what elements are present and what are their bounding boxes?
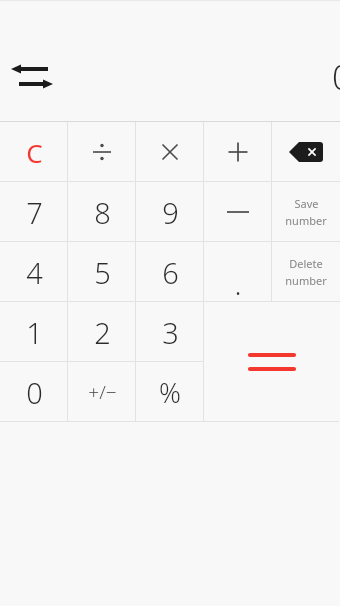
staticText: 8 bbox=[94, 193, 111, 232]
staticText: 0 bbox=[26, 373, 43, 412]
staticText: 1 bbox=[26, 313, 43, 352]
button[interactable]: 3 bbox=[136, 302, 204, 362]
staticText: 6 bbox=[162, 253, 179, 292]
button[interactable]: 5 bbox=[68, 242, 136, 302]
button[interactable]: Minus bbox=[204, 182, 272, 242]
button[interactable]: +/− bbox=[68, 362, 136, 422]
button[interactable]: % bbox=[136, 362, 204, 422]
button[interactable]: 1 bbox=[0, 302, 68, 362]
staticText: 3 bbox=[162, 313, 179, 352]
staticText: 0 bbox=[332, 54, 340, 100]
button[interactable]: Divide bbox=[68, 122, 136, 182]
button[interactable]: 9 bbox=[136, 182, 204, 242]
button[interactable]: 6 bbox=[136, 242, 204, 302]
staticText: % bbox=[159, 374, 181, 411]
staticText: number bbox=[285, 273, 327, 288]
staticText: C bbox=[26, 135, 43, 170]
button[interactable]: Delete bbox=[272, 242, 340, 302]
button[interactable]: Plus bbox=[204, 122, 272, 182]
staticText: +/− bbox=[88, 379, 117, 405]
button[interactable]: Backspace bbox=[272, 122, 340, 182]
staticText: . bbox=[234, 264, 242, 303]
staticText: 4 bbox=[26, 253, 43, 292]
staticText: Save bbox=[294, 196, 319, 211]
button[interactable]: Equals bbox=[204, 302, 339, 422]
button[interactable]: Swap bbox=[10, 61, 54, 95]
staticText: 9 bbox=[162, 193, 179, 232]
button[interactable]: 8 bbox=[68, 182, 136, 242]
button[interactable]: C bbox=[0, 122, 68, 182]
button[interactable]: 0 bbox=[0, 362, 68, 422]
staticText: Delete bbox=[289, 256, 323, 271]
staticText: number bbox=[285, 213, 327, 228]
button[interactable]: 7 bbox=[0, 182, 68, 242]
button[interactable]: 2 bbox=[68, 302, 136, 362]
staticText: 2 bbox=[94, 313, 111, 352]
button[interactable]: Save bbox=[272, 182, 340, 242]
button[interactable]: 4 bbox=[0, 242, 68, 302]
button[interactable]: Multiply bbox=[136, 122, 204, 182]
staticText: 7 bbox=[26, 193, 43, 232]
staticText: 5 bbox=[94, 253, 111, 292]
button[interactable]: . bbox=[204, 242, 272, 302]
